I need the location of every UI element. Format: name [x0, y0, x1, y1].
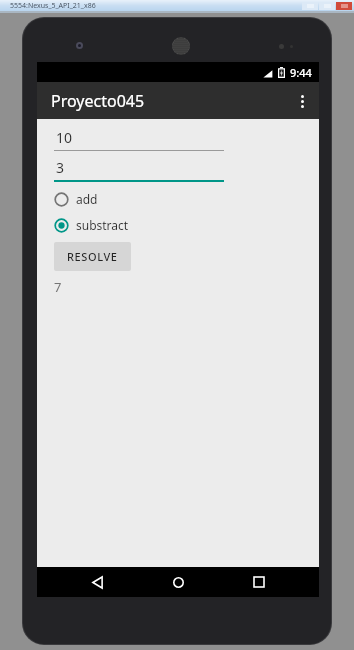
staticText: substract [76, 217, 129, 233]
staticText: Proyecto045 [51, 90, 145, 112]
button[interactable]: Recent apps [242, 567, 276, 597]
button[interactable]: 3 [54, 158, 224, 182]
button[interactable]: RESOLVE [54, 242, 131, 271]
button[interactable]: Window button [319, 2, 335, 10]
button[interactable]: Window button [336, 2, 352, 10]
button[interactable]: add [54, 188, 98, 210]
staticText: 3 [56, 158, 65, 177]
button[interactable]: substract [54, 214, 129, 236]
button[interactable]: 10 [54, 128, 224, 151]
button[interactable]: More options [285, 84, 319, 118]
button[interactable]: Home [161, 567, 195, 597]
staticText: 9:44 [290, 65, 312, 80]
staticText: 10 [56, 128, 73, 147]
button[interactable]: Proyecto045 [37, 82, 319, 119]
staticText: RESOLVE [67, 249, 118, 264]
button[interactable]: Window button [302, 2, 318, 10]
button[interactable]: Back [80, 567, 114, 597]
staticText: 5554:Nexus_5_API_21_x86 [10, 1, 96, 11]
staticText: 7 [54, 278, 62, 296]
staticText: add [76, 191, 98, 207]
